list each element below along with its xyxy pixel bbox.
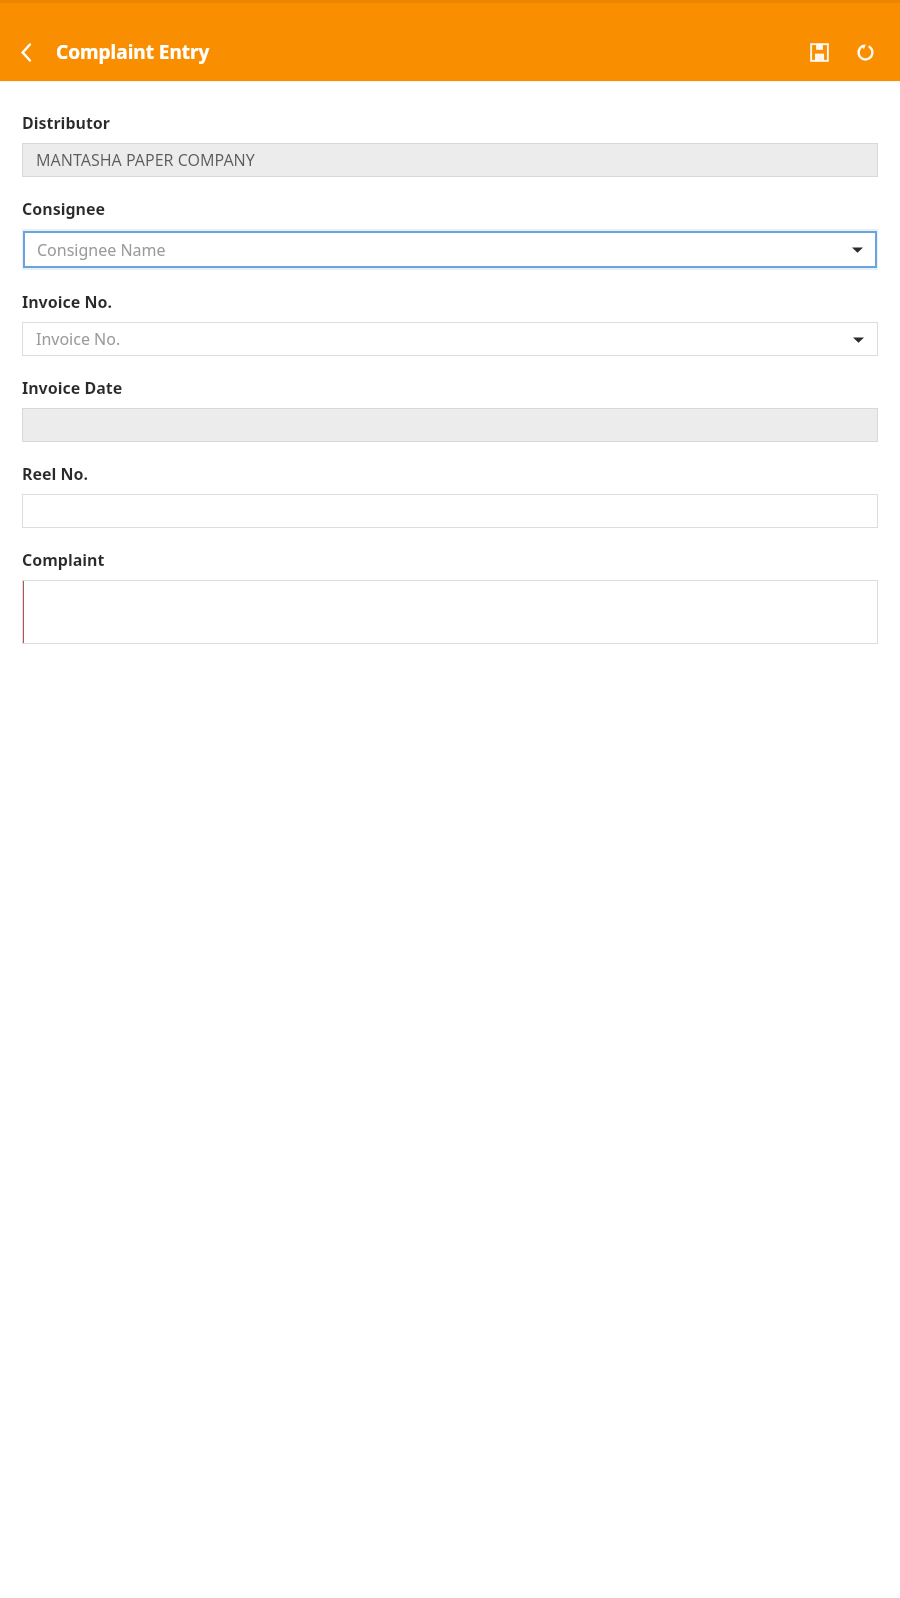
staticText: Complaint (22, 549, 105, 571)
button[interactable] (22, 494, 878, 528)
staticText: MANTASHA PAPER COMPANY (36, 149, 255, 171)
staticText: Consignee (22, 198, 106, 220)
button[interactable] (22, 580, 878, 644)
staticText: Complaint Entry (56, 39, 210, 65)
button[interactable]: Consignee Name (22, 229, 878, 270)
staticText: Invoice Date (22, 377, 123, 399)
staticText: Reel No. (22, 463, 89, 485)
button[interactable]: Back (8, 34, 44, 70)
staticText: Consignee Name (37, 239, 166, 261)
staticText: Distributor (22, 112, 111, 134)
button[interactable]: Save (796, 29, 842, 75)
button[interactable]: Reset (842, 29, 888, 75)
staticText: Invoice No. (22, 291, 113, 313)
button[interactable]: Invoice No. (22, 322, 878, 356)
staticText: Invoice No. (36, 328, 121, 350)
